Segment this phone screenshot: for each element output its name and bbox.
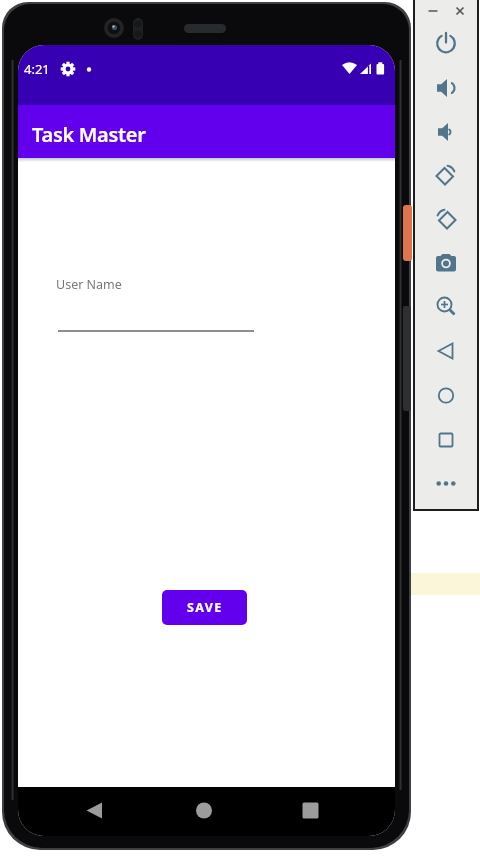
button[interactable] bbox=[424, 199, 468, 239]
button[interactable] bbox=[424, 376, 468, 416]
staticText: User Name bbox=[56, 276, 122, 293]
button[interactable] bbox=[451, 3, 469, 19]
button[interactable] bbox=[424, 112, 468, 152]
staticText: 4:21 bbox=[24, 60, 50, 78]
button[interactable] bbox=[78, 803, 110, 835]
button[interactable] bbox=[294, 803, 326, 835]
button[interactable] bbox=[424, 420, 468, 460]
button[interactable] bbox=[424, 3, 442, 19]
button[interactable] bbox=[424, 68, 468, 108]
button[interactable] bbox=[424, 155, 468, 195]
button[interactable]: SAVE bbox=[162, 590, 247, 625]
button[interactable] bbox=[424, 464, 468, 504]
button[interactable] bbox=[424, 24, 468, 64]
staticText: Task Master bbox=[32, 121, 146, 148]
button[interactable] bbox=[188, 803, 220, 835]
staticText: SAVE bbox=[187, 599, 223, 616]
button[interactable] bbox=[424, 243, 468, 283]
button[interactable] bbox=[424, 331, 468, 371]
button[interactable] bbox=[424, 286, 468, 326]
